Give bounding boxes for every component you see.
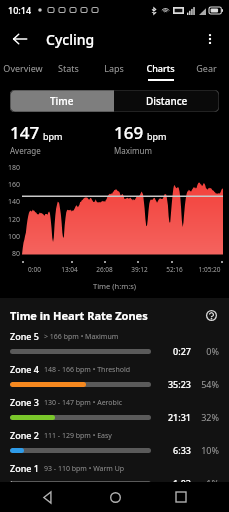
staticText: 0:00: [28, 265, 41, 274]
staticText: 1:05:20: [198, 265, 221, 274]
staticText: Zone 2: [10, 429, 39, 441]
button[interactable]: Zone 5: [0, 330, 229, 363]
staticText: 160: [7, 180, 20, 190]
button[interactable]: Zone 4: [0, 363, 229, 396]
staticText: 93 - 110 bpm • Warm Up: [44, 464, 125, 474]
button[interactable]: Back: [4, 23, 36, 55]
staticText: Maximum: [114, 145, 152, 156]
button[interactable]: Overview: [0, 58, 45, 84]
staticText: 54%: [195, 378, 219, 390]
staticText: Time in Heart Rate Zones: [10, 308, 203, 323]
staticText: Overview: [3, 62, 43, 74]
staticText: Zone 5: [10, 330, 39, 342]
staticText: 148 - 166 bpm • Threshold: [44, 365, 131, 375]
staticText: 52:16: [166, 265, 183, 274]
button[interactable]: Zone 3: [0, 396, 229, 429]
staticText: Distance: [146, 94, 188, 108]
staticText: Stats: [58, 62, 79, 74]
button[interactable]: More options: [195, 24, 225, 54]
staticText: 0%: [195, 345, 219, 357]
staticText: 1:03: [157, 477, 191, 489]
staticText: Zone 3: [10, 396, 39, 408]
staticText: 100: [7, 232, 20, 242]
staticText: 1%: [195, 477, 219, 489]
button[interactable]: Laps: [91, 58, 137, 84]
button[interactable]: Time: [10, 90, 114, 112]
button[interactable]: Help: [203, 307, 219, 323]
button[interactable]: Distance: [114, 90, 219, 112]
staticText: 39:12: [131, 265, 148, 274]
staticText: 13:04: [61, 265, 78, 274]
button[interactable]: Recent apps: [163, 482, 199, 512]
staticText: Gear: [196, 62, 217, 74]
button[interactable]: Zone 1: [0, 462, 229, 495]
button[interactable]: Back: [30, 482, 66, 512]
staticText: 21:31: [157, 411, 191, 423]
staticText: 10%: [195, 444, 219, 456]
staticText: Zone 4: [10, 363, 39, 375]
staticText: 10:14: [8, 4, 32, 16]
staticText: Laps: [104, 62, 124, 74]
staticText: Charts: [146, 62, 175, 74]
staticText: 111 - 129 bpm • Easy: [44, 431, 112, 441]
staticText: Zone 1: [10, 462, 39, 474]
button[interactable]: Stats: [45, 58, 91, 84]
button[interactable]: Charts: [137, 58, 183, 84]
staticText: 6:33: [157, 444, 191, 456]
staticText: 147: [10, 121, 40, 144]
staticText: Time: [50, 94, 74, 108]
staticText: 0:27: [157, 345, 191, 357]
staticText: Average: [10, 145, 41, 156]
staticText: 120: [7, 215, 20, 225]
staticText: 140: [7, 197, 20, 207]
button[interactable]: Home: [97, 482, 133, 512]
staticText: 169: [114, 121, 144, 144]
staticText: Time (h:m:s): [0, 281, 229, 291]
staticText: 80: [11, 249, 20, 259]
staticText: 180: [7, 163, 20, 173]
staticText: bpm: [43, 130, 63, 142]
staticText: 35:23: [157, 378, 191, 390]
staticText: bpm: [147, 130, 167, 142]
staticText: 32%: [195, 411, 219, 423]
staticText: Cycling: [46, 30, 95, 49]
button[interactable]: Zone 2: [0, 429, 229, 462]
button[interactable]: Gear: [183, 58, 229, 84]
staticText: 130 - 147 bpm • Aerobic: [44, 398, 123, 408]
staticText: > 166 bpm • Maximum: [44, 332, 119, 342]
staticText: 26:08: [96, 265, 113, 274]
